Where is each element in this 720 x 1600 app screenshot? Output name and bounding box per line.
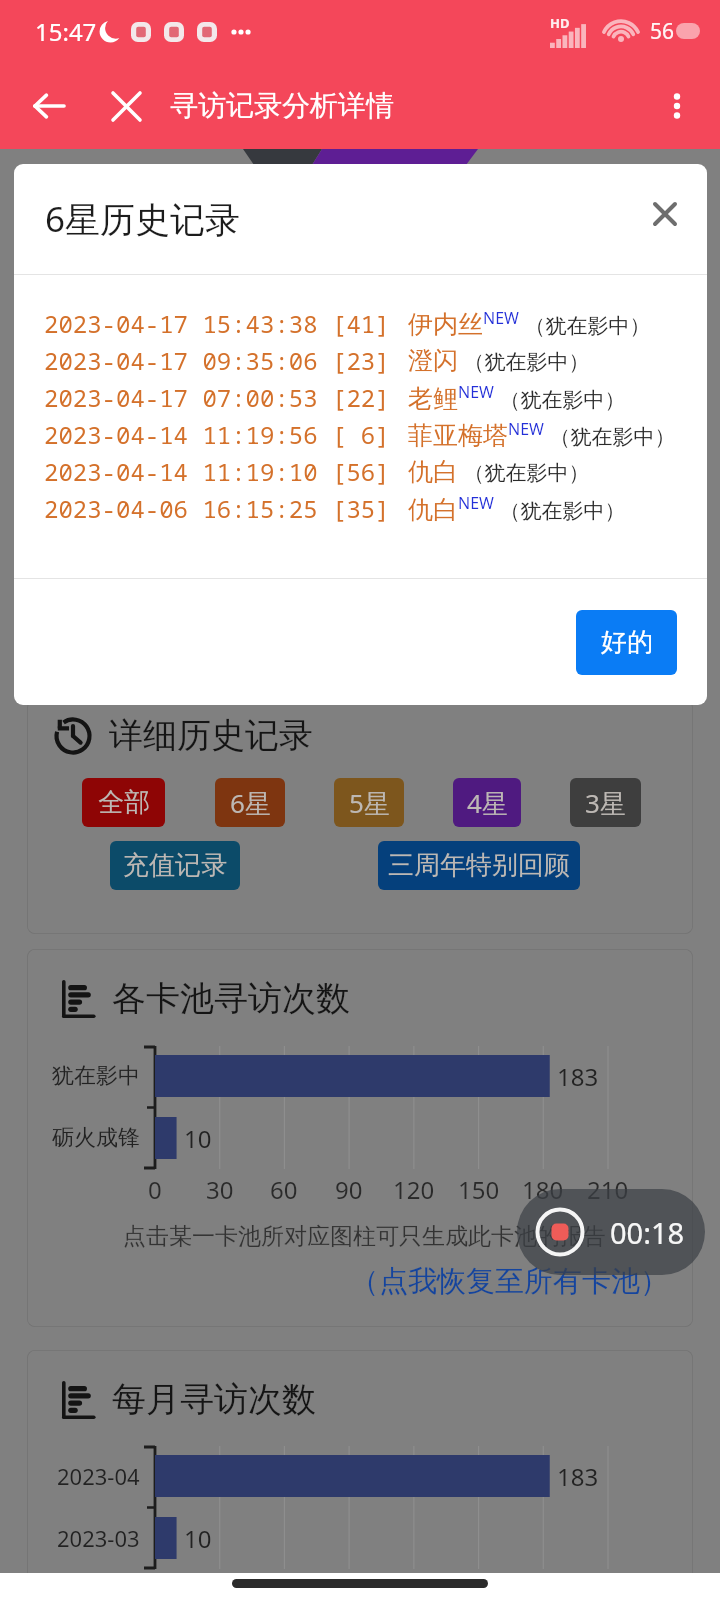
staticText: 00:18 (610, 1213, 685, 1252)
button[interactable]: 4星 (453, 778, 521, 827)
staticText: 30 (206, 1173, 234, 1206)
staticText: 各卡池寻访次数 (112, 977, 350, 1020)
staticText: 6星 (230, 785, 271, 821)
staticText: 10 (184, 1122, 212, 1155)
staticText: 150 (458, 1173, 500, 1206)
staticText: 伊内丝NEW （犹在影中） (408, 307, 651, 340)
staticText: 2023-04-17 15:43:38 [41] (44, 307, 390, 340)
button[interactable]: 6星 (215, 778, 285, 827)
staticText: 每月寻访次数 (112, 1378, 316, 1421)
staticText: 183 (557, 1060, 599, 1093)
staticText: 60 (270, 1173, 298, 1206)
staticText: 6星历史记录 (45, 195, 241, 243)
staticText: 10 (184, 1522, 212, 1555)
staticText: HD (550, 14, 570, 32)
staticText: 详细历史记录 (109, 714, 313, 757)
staticText: 120 (393, 1173, 435, 1206)
staticText: 4星 (467, 785, 508, 821)
button[interactable]: Close (100, 80, 152, 132)
staticText: 2023-04-06 16:15:25 [35] (44, 492, 390, 525)
button[interactable]: 好的 (576, 610, 677, 675)
staticText: 210 (587, 1173, 629, 1206)
staticText: 15:47 (35, 15, 97, 48)
staticText: 2023-04-14 11:19:56 [ 6] (44, 418, 390, 451)
staticText: 犹在影中 (52, 1062, 140, 1090)
staticText: （点我恢复至所有卡池） (350, 1263, 669, 1300)
staticText: 菲亚梅塔NEW （犹在影中） (408, 418, 676, 451)
staticText: 砺火成锋 (52, 1124, 140, 1152)
staticText: 180 (522, 1173, 564, 1206)
staticText: 5星 (349, 785, 390, 821)
button[interactable]: 充值记录 (110, 841, 240, 890)
button[interactable]: 5星 (334, 778, 404, 827)
button[interactable]: Stop screen recording (517, 1189, 705, 1275)
staticText: 0 (148, 1173, 162, 1206)
staticText: 好的 (601, 626, 653, 659)
staticText: 2023-04-17 07:00:53 [22] (44, 381, 390, 414)
staticText: 老鲤NEW （犹在影中） (408, 381, 626, 414)
staticText: 寻访记录分析详情 (170, 88, 394, 123)
button[interactable]: 3星 (570, 778, 641, 827)
staticText: 澄闪 （犹在影中） (408, 345, 590, 376)
staticText: 183 (557, 1460, 599, 1493)
button[interactable]: Back (20, 77, 78, 135)
staticText: 全部 (98, 786, 150, 819)
button[interactable]: 全部 (82, 778, 165, 827)
staticText: 仇白 （犹在影中） (408, 456, 590, 487)
staticText: 充值记录 (123, 849, 227, 882)
staticText: 56 (650, 17, 675, 46)
staticText: 三周年特别回顾 (388, 849, 570, 882)
staticText: 2023-04 (57, 1461, 140, 1491)
button[interactable]: More options (646, 75, 708, 137)
button[interactable]: 三周年特别回顾 (378, 841, 580, 890)
staticText: 点击某一卡池所对应图柱可只生成此卡池的报告 (123, 1222, 606, 1251)
staticText: 2023-04-17 09:35:06 [23] (44, 344, 390, 377)
button[interactable]: Close dialog (642, 191, 688, 237)
staticText: 仇白NEW （犹在影中） (408, 492, 626, 525)
staticText: 3星 (585, 785, 626, 821)
staticText: 2023-03 (57, 1523, 140, 1553)
staticText: 2023-04-14 11:19:10 [56] (44, 455, 390, 488)
staticText: 90 (335, 1173, 363, 1206)
